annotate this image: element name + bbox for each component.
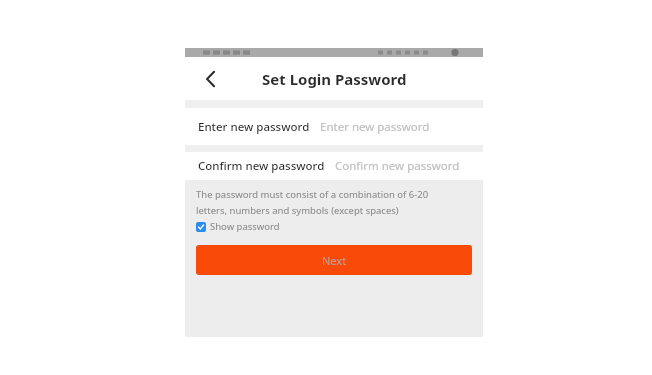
staticText: The password must consist of a combinati…	[196, 188, 429, 201]
staticText: Enter new password	[320, 119, 430, 135]
staticText: Enter new password	[198, 119, 310, 135]
staticText: letters, numbers and symbols (except spa…	[196, 204, 399, 217]
button[interactable]: Back	[197, 65, 225, 93]
button[interactable]: Show password	[196, 219, 280, 234]
staticText: Confirm new password	[198, 158, 325, 174]
button[interactable]: Next	[196, 245, 472, 275]
staticText: Confirm new password	[335, 158, 460, 174]
staticText: Show password	[210, 220, 280, 233]
button[interactable]: Confirm new password	[185, 152, 483, 180]
staticText: Next	[322, 253, 347, 268]
button[interactable]: Enter new password	[185, 108, 483, 145]
staticText: Set Login Password	[262, 69, 407, 89]
